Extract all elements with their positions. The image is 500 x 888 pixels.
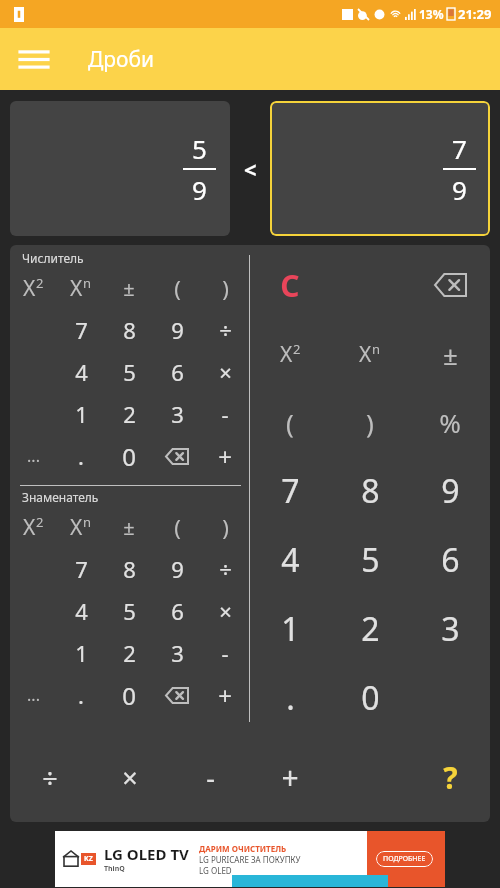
button[interactable]: 6 (153, 351, 201, 393)
button[interactable]: 0 (105, 674, 153, 716)
button[interactable]: ... (10, 674, 57, 716)
button[interactable]: ( (153, 506, 201, 548)
button[interactable]: X (10, 506, 57, 548)
button[interactable]: 6 (153, 590, 201, 632)
staticText: 5 (192, 131, 207, 166)
button[interactable]: ÷ (201, 548, 249, 590)
button[interactable]: - (170, 732, 250, 822)
button[interactable]: × (201, 351, 249, 393)
staticText: Числитель (22, 250, 84, 266)
button[interactable]: 3 (153, 632, 201, 674)
staticText: - (221, 638, 229, 668)
staticText: ÷ (42, 759, 58, 796)
staticText: 2 (123, 638, 136, 668)
button[interactable]: ) (330, 388, 410, 456)
button[interactable]: 9 (153, 548, 201, 590)
staticText: 9 (192, 172, 207, 207)
button[interactable]: 1 (57, 632, 105, 674)
button[interactable]: X (10, 267, 57, 309)
button[interactable]: X (250, 320, 330, 388)
button[interactable]: 1 (57, 393, 105, 435)
button[interactable]: 2 (105, 632, 153, 674)
button[interactable]: . (250, 663, 330, 732)
button[interactable]: 2 (105, 393, 153, 435)
button[interactable]: 3 (410, 594, 490, 663)
button[interactable]: Backspace (410, 250, 490, 320)
staticText: 5 (123, 596, 136, 626)
button[interactable]: ) (201, 267, 249, 309)
button[interactable]: 0 (105, 435, 153, 477)
staticText: ) (222, 512, 229, 542)
button[interactable]: Menu (14, 39, 54, 79)
staticText: 4 (281, 538, 300, 582)
button[interactable]: 9 (153, 309, 201, 351)
staticText: - (206, 759, 215, 796)
button[interactable]: ( (250, 388, 330, 456)
staticText: C (280, 265, 300, 306)
staticText: LG OLED (199, 865, 232, 876)
button[interactable]: ) (201, 506, 249, 548)
button[interactable]: . (57, 435, 105, 477)
button[interactable]: ÷ (201, 309, 249, 351)
button[interactable]: 7 (57, 548, 105, 590)
button[interactable]: ÷ (10, 732, 90, 822)
button[interactable]: 9 (410, 456, 490, 525)
staticText: 5 (361, 538, 380, 582)
button[interactable]: 5 (330, 525, 410, 594)
button[interactable]: 7 (270, 101, 490, 236)
button[interactable]: 2 (330, 594, 410, 663)
staticText: 6 (441, 538, 460, 582)
button[interactable]: 8 (105, 548, 153, 590)
staticText: 3 (441, 607, 460, 651)
button[interactable]: 7 (57, 309, 105, 351)
button[interactable]: ± (105, 506, 153, 548)
button[interactable]: + (250, 732, 330, 822)
button[interactable]: ? (410, 732, 490, 822)
staticText: 3 (171, 399, 184, 429)
button[interactable]: 4 (57, 351, 105, 393)
button[interactable]: KZ (55, 831, 445, 887)
button[interactable]: 5 (10, 101, 230, 236)
button[interactable]: 6 (410, 525, 490, 594)
staticText: Знаменатель (22, 489, 99, 505)
button[interactable]: 4 (57, 590, 105, 632)
button[interactable]: 7 (250, 456, 330, 525)
staticText: ... (27, 445, 40, 467)
button[interactable]: + (201, 435, 249, 477)
button[interactable]: % (410, 388, 490, 456)
button[interactable]: 1 (250, 594, 330, 663)
staticText: ( (174, 512, 181, 542)
button[interactable]: 5 (105, 351, 153, 393)
button[interactable]: Backspace (153, 435, 201, 477)
button[interactable]: 8 (330, 456, 410, 525)
button[interactable]: . (57, 674, 105, 716)
button[interactable]: ± (105, 267, 153, 309)
button[interactable]: Backspace (153, 674, 201, 716)
staticText: X (70, 513, 83, 542)
button[interactable]: ( (153, 267, 201, 309)
button[interactable]: 4 (250, 525, 330, 594)
staticText: 0 (122, 679, 136, 712)
staticText: 7 (75, 554, 88, 584)
button[interactable]: 0 (330, 663, 410, 732)
staticText: 7 (281, 469, 300, 513)
button[interactable]: X (57, 267, 105, 309)
button[interactable]: X (57, 506, 105, 548)
button[interactable]: - (201, 393, 249, 435)
staticText: 2 (293, 340, 301, 358)
button[interactable]: ± (410, 320, 490, 388)
button[interactable]: X (330, 320, 410, 388)
staticText: n (83, 274, 92, 292)
button[interactable]: 3 (153, 393, 201, 435)
button[interactable]: - (201, 632, 249, 674)
button[interactable]: × (201, 590, 249, 632)
staticText: LG PURICARE ЗА ПОКУПКУ (199, 854, 301, 865)
staticText: 8 (123, 315, 136, 345)
button[interactable]: 8 (105, 309, 153, 351)
staticText: + (218, 440, 232, 473)
button[interactable]: 5 (105, 590, 153, 632)
button[interactable]: C (250, 250, 330, 320)
button[interactable]: ... (10, 435, 57, 477)
button[interactable]: × (90, 732, 170, 822)
button[interactable]: + (201, 674, 249, 716)
